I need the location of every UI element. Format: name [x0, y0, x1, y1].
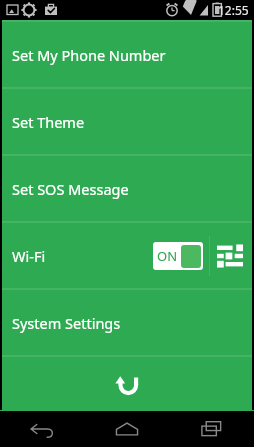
- button[interactable]: Set SOS Message: [2, 156, 252, 221]
- staticText: System Settings: [12, 313, 121, 333]
- button[interactable]: Wi-Fi settings: [214, 240, 246, 272]
- button[interactable]: Home: [84, 410, 169, 447]
- staticText: Wi-Fi: [12, 246, 46, 266]
- button[interactable]: Recent apps: [169, 410, 254, 447]
- button[interactable]: Back: [0, 410, 84, 447]
- staticText: Set SOS Message: [12, 179, 129, 199]
- button[interactable]: Set My Phone Number: [2, 22, 252, 87]
- staticText: 12:55: [218, 2, 249, 18]
- button[interactable]: Set Theme: [2, 89, 252, 154]
- button[interactable]: System Settings: [2, 290, 252, 355]
- button[interactable]: Wi-Fi on: [153, 242, 203, 270]
- button[interactable]: Back: [2, 358, 252, 410]
- staticText: ON: [157, 247, 178, 265]
- staticText: Set My Phone Number: [12, 45, 166, 65]
- staticText: Set Theme: [12, 112, 85, 132]
